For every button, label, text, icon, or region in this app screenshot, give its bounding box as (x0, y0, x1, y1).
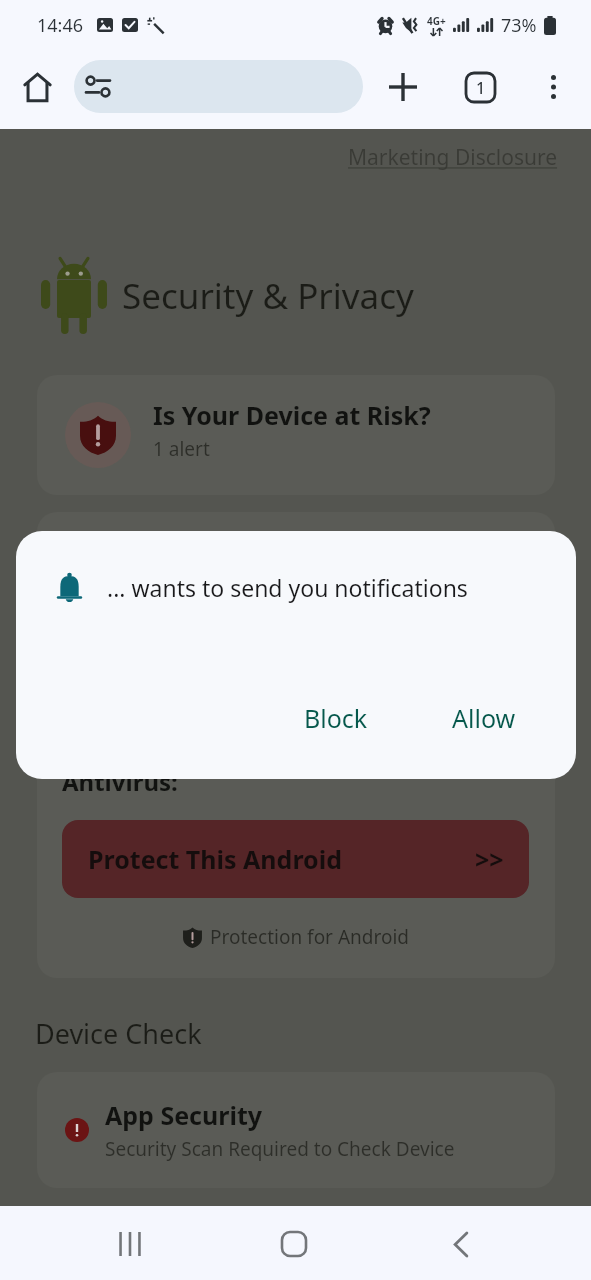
button[interactable]: Tabs (456, 63, 504, 111)
staticText: 14:46 (37, 13, 84, 38)
button[interactable]: Protect This Android (62, 820, 529, 898)
button[interactable]: New tab (379, 63, 427, 111)
staticText: Is Your Device at Risk? (153, 398, 431, 432)
button[interactable]: Allow (434, 688, 534, 748)
staticText: Antivirus: (62, 765, 178, 798)
staticText: 4G+ (427, 14, 446, 28)
staticText: 1 alert (153, 436, 210, 462)
staticText: 73% (501, 13, 537, 38)
staticText: Allow (452, 701, 516, 735)
button[interactable]: Is Your Device at Risk? (37, 375, 555, 495)
button[interactable]: Block (286, 688, 386, 748)
staticText: 1 (476, 77, 486, 99)
staticText: Security & Privacy (122, 272, 414, 320)
staticText: Device Check (35, 1015, 202, 1052)
staticText: App Security (105, 1098, 263, 1132)
staticText: ... wants to send you notifications (107, 572, 468, 603)
staticText: Block (304, 701, 368, 735)
staticText: Protect This Android (88, 842, 342, 876)
button[interactable]: Back (433, 1216, 489, 1272)
button[interactable]: Recent apps (102, 1216, 158, 1272)
staticText: Protection for Android (210, 924, 410, 950)
button[interactable]: Home (13, 63, 61, 111)
staticText: Security Scan Required to Check Device (105, 1136, 455, 1162)
button[interactable]: Search or type URL (74, 60, 363, 113)
button[interactable]: App Security (37, 1072, 555, 1188)
button[interactable]: Home (266, 1216, 322, 1272)
staticText: >> (475, 842, 504, 876)
button[interactable]: More options (531, 65, 575, 109)
button[interactable]: Marketing Disclosure (348, 143, 558, 172)
